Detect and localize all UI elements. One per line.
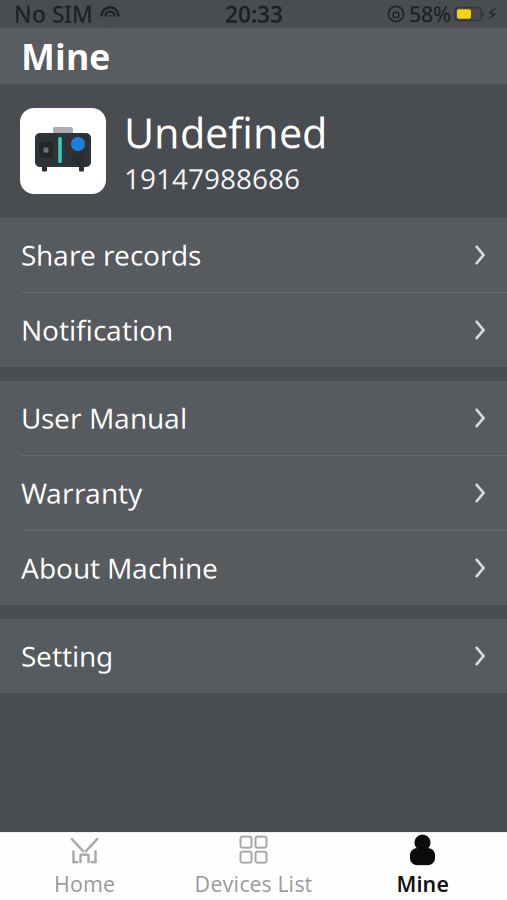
staticText: Share records [21, 236, 201, 274]
staticText: ⚡︎ [486, 4, 498, 24]
button[interactable]: User Manual [0, 381, 507, 455]
staticText: Devices List [194, 870, 312, 898]
button[interactable]: Notification [0, 293, 507, 367]
button[interactable]: About Machine [0, 531, 507, 605]
button[interactable]: Setting [0, 619, 507, 693]
staticText: 19147988686 [124, 160, 300, 197]
staticText: About Machine [21, 549, 218, 587]
button[interactable]: Home [0, 833, 169, 900]
button[interactable]: Share records [0, 218, 507, 292]
staticText: Notification [21, 311, 173, 349]
button[interactable]: Warranty [0, 456, 507, 530]
button[interactable]: Undefined [0, 84, 507, 218]
staticText: Setting [21, 637, 113, 675]
staticText: No SIM [14, 0, 93, 29]
staticText: User Manual [21, 399, 187, 437]
button[interactable]: Devices List [169, 833, 338, 900]
staticText: 58% [409, 0, 451, 28]
staticText: 20:33 [225, 0, 283, 29]
staticText: Undefined [124, 105, 327, 160]
staticText: Mine [396, 870, 448, 898]
button[interactable]: Mine [338, 833, 507, 900]
staticText: Mine [21, 32, 110, 80]
staticText: Home [54, 870, 115, 898]
staticText: Warranty [21, 474, 142, 512]
